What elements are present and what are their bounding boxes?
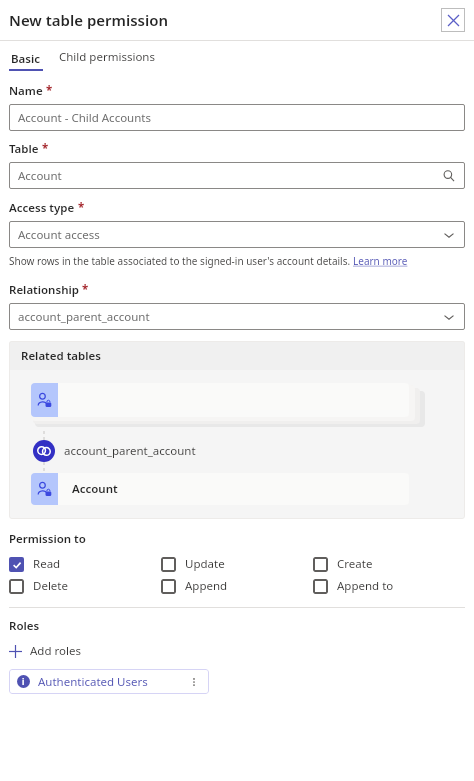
button[interactable]: account_parent_account xyxy=(9,440,465,462)
staticText: Read xyxy=(33,556,61,572)
button[interactable]: account_parent_account xyxy=(9,303,465,330)
staticText: Table xyxy=(9,141,39,157)
staticText: Account xyxy=(18,168,442,184)
staticText: Child permissions xyxy=(59,49,155,65)
button[interactable] xyxy=(31,383,409,417)
staticText: * xyxy=(82,282,89,298)
staticText: Relationship xyxy=(9,282,79,298)
button[interactable]: i xyxy=(9,669,209,694)
staticText: Account - Child Accounts xyxy=(18,110,456,126)
button[interactable]: Append to xyxy=(313,575,394,597)
button[interactable]: Add roles xyxy=(9,641,81,661)
button[interactable]: Account - Child Accounts xyxy=(9,104,465,131)
staticText: Access type xyxy=(9,200,75,216)
button[interactable]: Close xyxy=(441,8,465,32)
staticText: Append to xyxy=(337,578,394,594)
staticText: account_parent_account xyxy=(18,309,442,325)
staticText: Add roles xyxy=(30,643,81,659)
staticText: Update xyxy=(185,556,225,572)
button[interactable]: Append xyxy=(161,575,228,597)
staticText: * xyxy=(42,141,49,157)
staticText: Append xyxy=(185,578,228,594)
staticText: Show rows in the table associated to the… xyxy=(9,254,353,268)
staticText: Authenticated Users xyxy=(38,674,187,690)
button[interactable]: Read xyxy=(9,553,61,575)
button[interactable]: More options xyxy=(187,675,201,689)
staticText: Delete xyxy=(33,578,68,594)
staticText: * xyxy=(46,83,53,99)
staticText: Account access xyxy=(18,227,442,243)
staticText: * xyxy=(78,200,85,216)
button[interactable]: Account xyxy=(9,162,465,189)
staticText: Permission to xyxy=(9,531,86,547)
button[interactable]: Create xyxy=(313,553,373,575)
staticText: Roles xyxy=(9,618,40,634)
button[interactable]: Account access xyxy=(9,221,465,248)
staticText: New table permission xyxy=(9,10,169,30)
staticText: Related tables xyxy=(21,348,101,364)
staticText: Name xyxy=(9,83,43,99)
button[interactable]: Learn more xyxy=(353,254,408,268)
staticText: Basic xyxy=(11,51,41,67)
staticText: Learn more xyxy=(353,254,408,268)
staticText: Create xyxy=(337,556,373,572)
button[interactable]: Update xyxy=(161,553,225,575)
staticText: i xyxy=(22,676,25,687)
button[interactable]: Child permissions xyxy=(57,47,157,71)
staticText: account_parent_account xyxy=(64,443,196,459)
button[interactable]: Basic xyxy=(9,49,43,71)
button[interactable]: Account xyxy=(31,473,409,505)
staticText: Account xyxy=(72,481,118,497)
button[interactable]: Delete xyxy=(9,575,68,597)
